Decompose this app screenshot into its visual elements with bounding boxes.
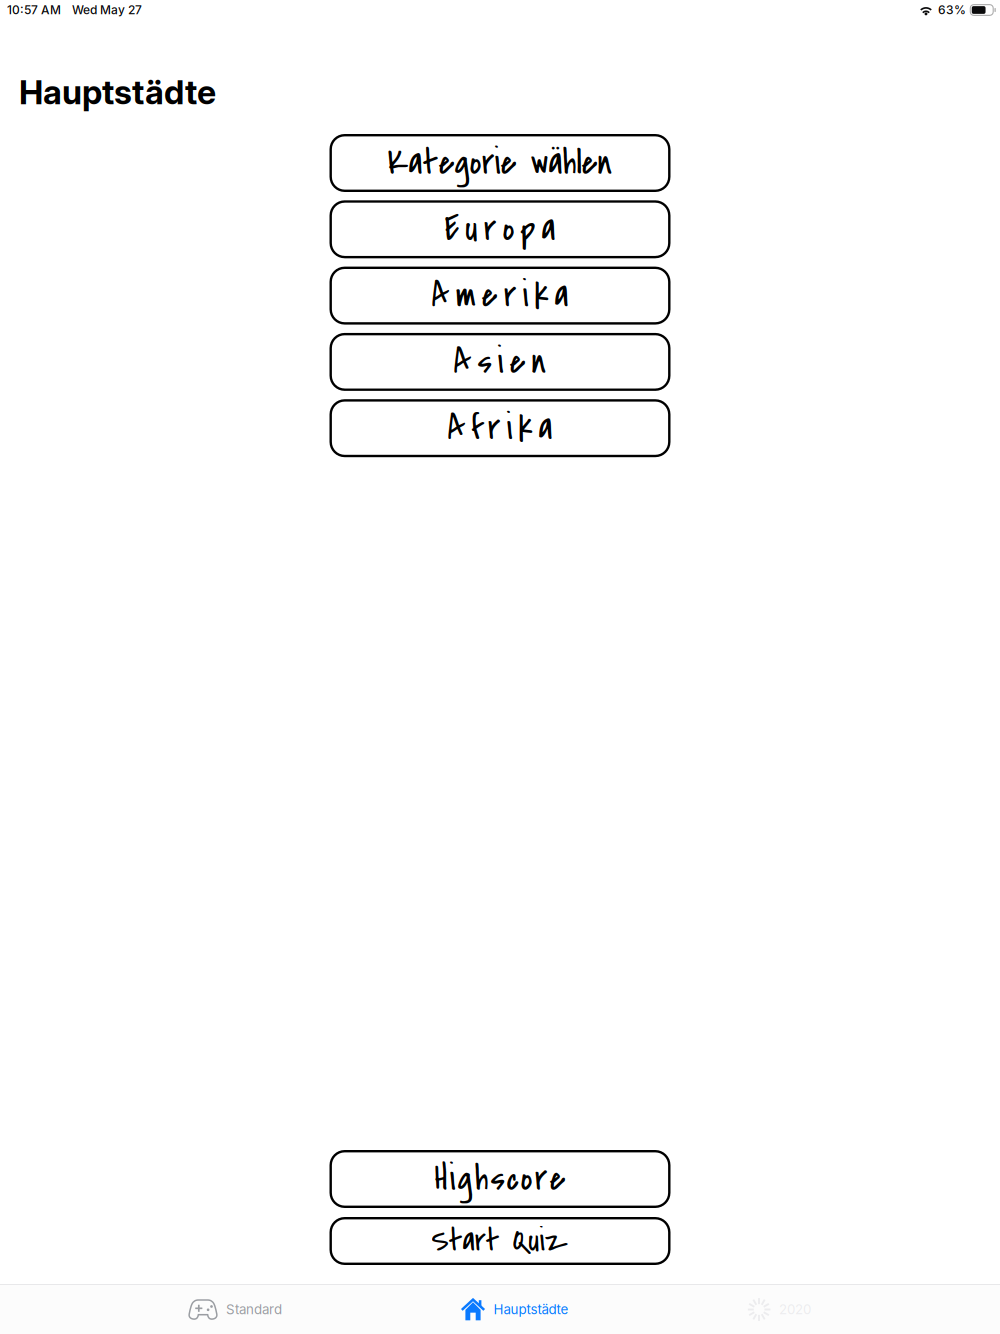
staticText: Wed May 27 <box>72 3 142 17</box>
staticText: Hauptstädte <box>19 72 216 112</box>
staticText: A s i e n <box>453 338 546 386</box>
button[interactable]: Europa <box>329 200 670 258</box>
staticText: E u r o p a <box>444 205 555 254</box>
staticText: 63% <box>938 3 966 17</box>
button[interactable]: 2020 <box>747 1285 811 1334</box>
staticText: H i g h s c o r e <box>434 1155 565 1203</box>
button[interactable]: Afrika <box>329 399 670 457</box>
staticText: 2020 <box>779 1301 811 1317</box>
button[interactable]: Highscore <box>329 1150 670 1208</box>
button[interactable]: Start Quiz <box>329 1217 670 1265</box>
staticText: Start Quiz <box>431 1219 568 1263</box>
button[interactable]: Amerika <box>329 267 670 325</box>
staticText: Kategorie wählen <box>387 139 612 187</box>
button[interactable]: Hauptstädte <box>460 1285 568 1334</box>
button[interactable]: Kategorie wählen <box>329 134 670 192</box>
staticText: Hauptstädte <box>493 1301 568 1317</box>
button[interactable]: Standard <box>187 1285 282 1334</box>
button[interactable]: Asien <box>329 333 670 391</box>
staticText: Standard <box>226 1301 282 1317</box>
staticText: A m e r i k a <box>431 271 568 320</box>
staticText: A f r i k a <box>447 404 552 452</box>
staticText: 10:57 AM <box>7 3 61 17</box>
